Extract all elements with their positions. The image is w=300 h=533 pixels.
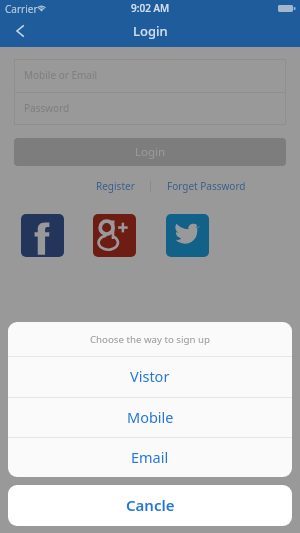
staticText: Email [131,447,169,467]
staticText: Password [24,101,70,115]
button[interactable]: Email [8,438,292,477]
button[interactable]: Sign in with Twitter [166,214,209,257]
staticText: Mobile [127,407,174,427]
staticText: Login [135,144,166,160]
button[interactable]: Mobile or Email [24,60,286,90]
staticText: Mobile or Email [24,68,98,82]
button[interactable]: Vistor [8,357,292,397]
button[interactable]: Forget Password [167,179,246,193]
button[interactable]: Cancle [8,485,292,526]
staticText: Carrier [5,2,38,16]
staticText: Choose the way to sign up [90,333,210,346]
button[interactable]: Sign in with Facebook [21,214,64,257]
staticText: Vistor [130,366,170,386]
staticText: Cancle [126,495,175,515]
staticText: Login [133,22,168,40]
button[interactable]: Sign in with Google Plus [93,214,136,257]
button[interactable]: Mobile [8,398,292,437]
staticText: Register [96,179,135,193]
button[interactable]: Back [9,21,31,41]
staticText: 9:02 AM [131,1,170,15]
button[interactable]: Register [96,179,135,193]
staticText: Forget Password [167,179,246,193]
